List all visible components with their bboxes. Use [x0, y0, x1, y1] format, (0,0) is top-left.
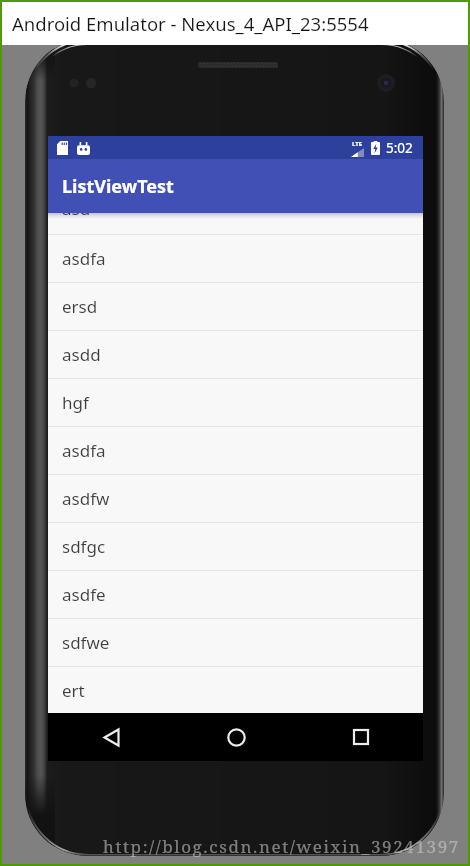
staticText: http://blog.csdn.net/weixin_39241397 — [103, 835, 460, 858]
button[interactable]: ersd — [48, 283, 423, 330]
button[interactable]: hgf — [48, 379, 423, 426]
staticText: hgf — [62, 391, 89, 414]
button[interactable]: Recent apps — [337, 713, 385, 761]
staticText: asd — [62, 213, 91, 218]
button[interactable]: sdfgc — [48, 523, 423, 570]
staticText: LTE — [352, 140, 363, 148]
button[interactable]: ListViewTest — [48, 159, 423, 213]
staticText: ert — [62, 679, 85, 702]
staticText: Android Emulator - Nexus_4_API_23:5554 — [12, 11, 369, 36]
button[interactable]: sdfwe — [48, 619, 423, 666]
button[interactable]: asd — [48, 213, 423, 234]
button[interactable]: asdfa — [48, 427, 423, 474]
staticText: sdfwe — [62, 631, 110, 654]
staticText: 5:02 — [386, 139, 413, 157]
button[interactable]: asdd — [48, 331, 423, 378]
button[interactable]: ert — [48, 667, 423, 713]
staticText: sdfgc — [62, 535, 106, 558]
staticText: asdfe — [62, 583, 106, 606]
staticText: asdd — [62, 343, 101, 366]
button[interactable]: Home — [212, 713, 260, 761]
staticText: asdfa — [62, 439, 106, 462]
button[interactable]: asdfa — [48, 235, 423, 282]
staticText: asdfw — [62, 487, 110, 510]
button[interactable]: asdfw — [48, 475, 423, 522]
staticText: ersd — [62, 295, 98, 318]
button[interactable]: asdfe — [48, 571, 423, 618]
staticText: asdfa — [62, 247, 106, 270]
button[interactable]: Back — [87, 713, 135, 761]
staticText: ListViewTest — [62, 174, 174, 199]
